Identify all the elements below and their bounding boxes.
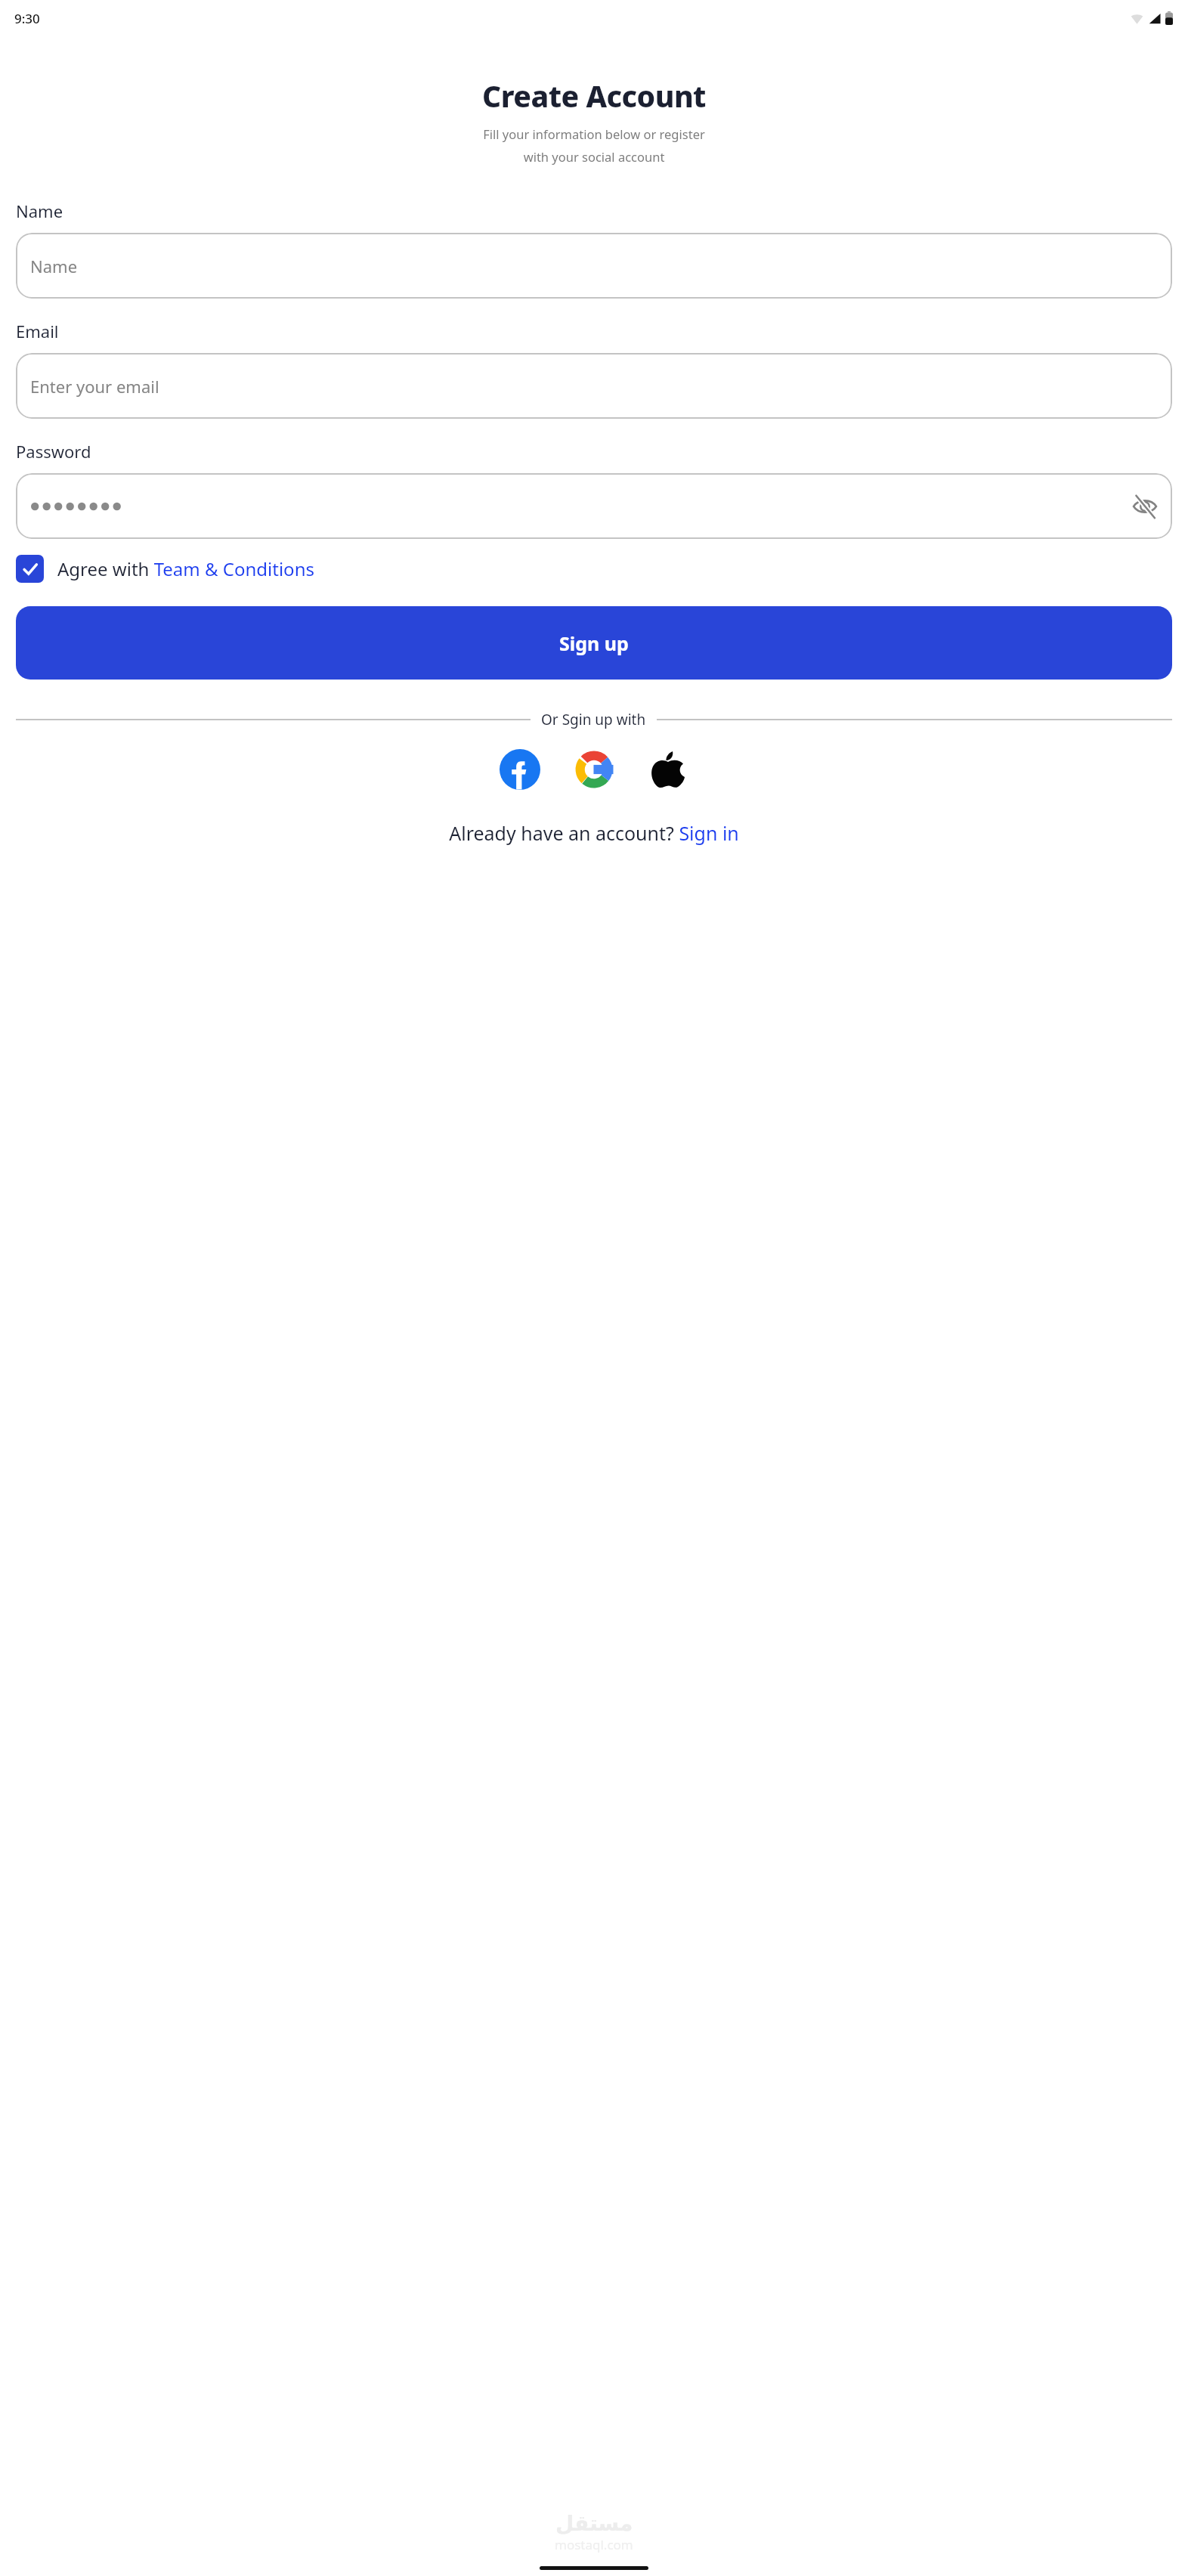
staticText: Already have an account? Sign in xyxy=(449,820,739,846)
staticText: mostaql.com xyxy=(555,2536,633,2553)
staticText: Agree with Team & Conditions xyxy=(57,556,314,581)
staticText: Create Account xyxy=(0,76,1188,116)
button[interactable]: Name xyxy=(16,233,1172,299)
button[interactable]: Hide password xyxy=(1132,473,1158,539)
button[interactable]: Already have an account? Sign in xyxy=(16,820,1172,846)
button[interactable]: Hide password xyxy=(16,473,1172,539)
button[interactable]: Agree with Team & Conditions xyxy=(16,555,314,583)
staticText: Password xyxy=(16,440,91,463)
button[interactable]: Sign up with Google xyxy=(574,749,614,790)
staticText: 9:30 xyxy=(14,10,40,27)
button[interactable]: Enter your email xyxy=(16,353,1172,419)
staticText: Email xyxy=(16,320,59,342)
staticText: Name xyxy=(30,255,78,277)
staticText: Or Sgin up with xyxy=(541,710,646,729)
staticText: Name xyxy=(16,200,63,222)
button[interactable]: Sign up with Apple xyxy=(648,749,688,790)
button[interactable]: Sign up xyxy=(16,606,1172,680)
staticText: Enter your email xyxy=(30,375,159,398)
staticText: مستقل xyxy=(555,2511,633,2536)
staticText: Fill your information below or register … xyxy=(0,125,1188,165)
staticText: Sign up xyxy=(559,630,629,656)
button[interactable]: Sign up with Facebook xyxy=(500,749,540,790)
